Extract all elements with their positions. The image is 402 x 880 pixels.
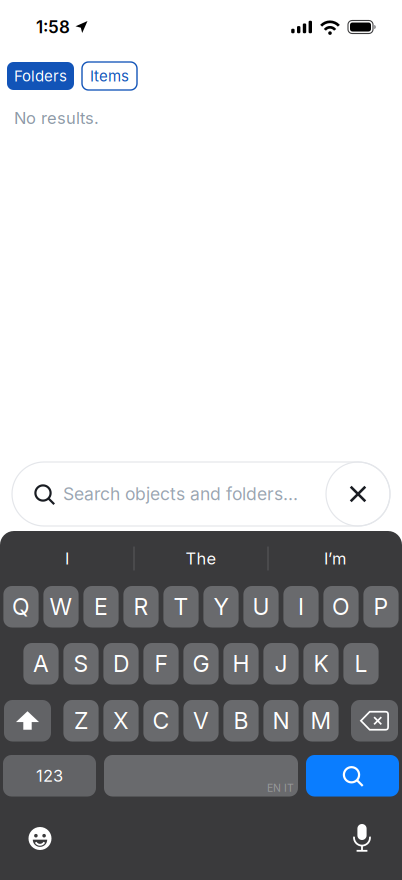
button[interactable]: Delete [351, 700, 398, 741]
staticText: H [232, 650, 249, 678]
button[interactable]: Dictation [352, 824, 372, 853]
button[interactable]: Y [203, 586, 239, 627]
button[interactable]: Numbers [3, 755, 96, 796]
staticText: Folders [14, 67, 67, 85]
button[interactable]: A [23, 643, 59, 684]
staticText: No results. [14, 108, 99, 128]
button[interactable]: E [83, 586, 119, 627]
button[interactable]: I [283, 586, 319, 627]
staticText: 123 [36, 766, 63, 786]
button[interactable]: The [134, 538, 267, 578]
button[interactable]: X [103, 700, 139, 741]
button[interactable]: S [63, 643, 99, 684]
button[interactable]: V [183, 700, 219, 741]
button[interactable]: Emoji [28, 826, 52, 850]
staticText: F [154, 650, 167, 678]
staticText: S [73, 650, 88, 678]
button[interactable]: Z [63, 700, 99, 741]
staticText: Q [12, 593, 30, 621]
button[interactable]: Q [3, 586, 39, 627]
staticText: G [192, 650, 209, 678]
button[interactable]: U [243, 586, 279, 627]
button[interactable]: L [343, 643, 379, 684]
staticText: B [233, 707, 248, 735]
staticText: I’m [324, 548, 346, 568]
button[interactable]: J [263, 643, 299, 684]
staticText: U [252, 593, 269, 621]
staticText: Items [90, 67, 129, 85]
staticText: Search objects and folders... [63, 483, 298, 505]
staticText: N [272, 707, 289, 735]
staticText: Z [74, 707, 88, 735]
staticText: E [94, 593, 108, 621]
button[interactable]: Space [104, 755, 298, 796]
button[interactable]: P [363, 586, 399, 627]
button[interactable]: G [183, 643, 219, 684]
staticText: V [193, 707, 209, 735]
button[interactable]: Search [306, 755, 399, 796]
staticText: R [133, 593, 148, 621]
staticText: M [310, 707, 331, 735]
staticText: I [65, 548, 69, 568]
staticText: A [33, 650, 49, 678]
button[interactable]: Clear search [326, 462, 390, 526]
button[interactable]: Shift [4, 700, 51, 741]
button[interactable]: O [323, 586, 359, 627]
button[interactable]: Items [82, 62, 137, 90]
button[interactable]: N [263, 700, 299, 741]
staticText: L [354, 650, 367, 678]
staticText: J [274, 650, 287, 678]
button[interactable]: M [303, 700, 339, 741]
button[interactable]: W [43, 586, 79, 627]
button[interactable]: I’m [268, 538, 401, 578]
button[interactable]: R [123, 586, 159, 627]
staticText: K [313, 650, 328, 678]
staticText: W [49, 593, 72, 621]
staticText: X [113, 707, 129, 735]
staticText: 1:58 [36, 17, 70, 37]
button[interactable]: H [223, 643, 259, 684]
button[interactable]: K [303, 643, 339, 684]
staticText: I [298, 593, 304, 621]
staticText: EN IT [267, 781, 294, 794]
staticText: P [373, 593, 388, 621]
button[interactable]: I [0, 538, 133, 578]
staticText: T [173, 593, 188, 621]
staticText: C [152, 707, 169, 735]
staticText: O [332, 593, 350, 621]
button[interactable]: F [143, 643, 179, 684]
staticText: D [113, 650, 129, 678]
button[interactable]: D [103, 643, 139, 684]
staticText: Y [213, 593, 228, 621]
button[interactable]: C [143, 700, 179, 741]
button[interactable]: T [163, 586, 199, 627]
button[interactable]: B [223, 700, 259, 741]
staticText: The [185, 548, 216, 568]
button[interactable]: Folders [7, 62, 74, 90]
